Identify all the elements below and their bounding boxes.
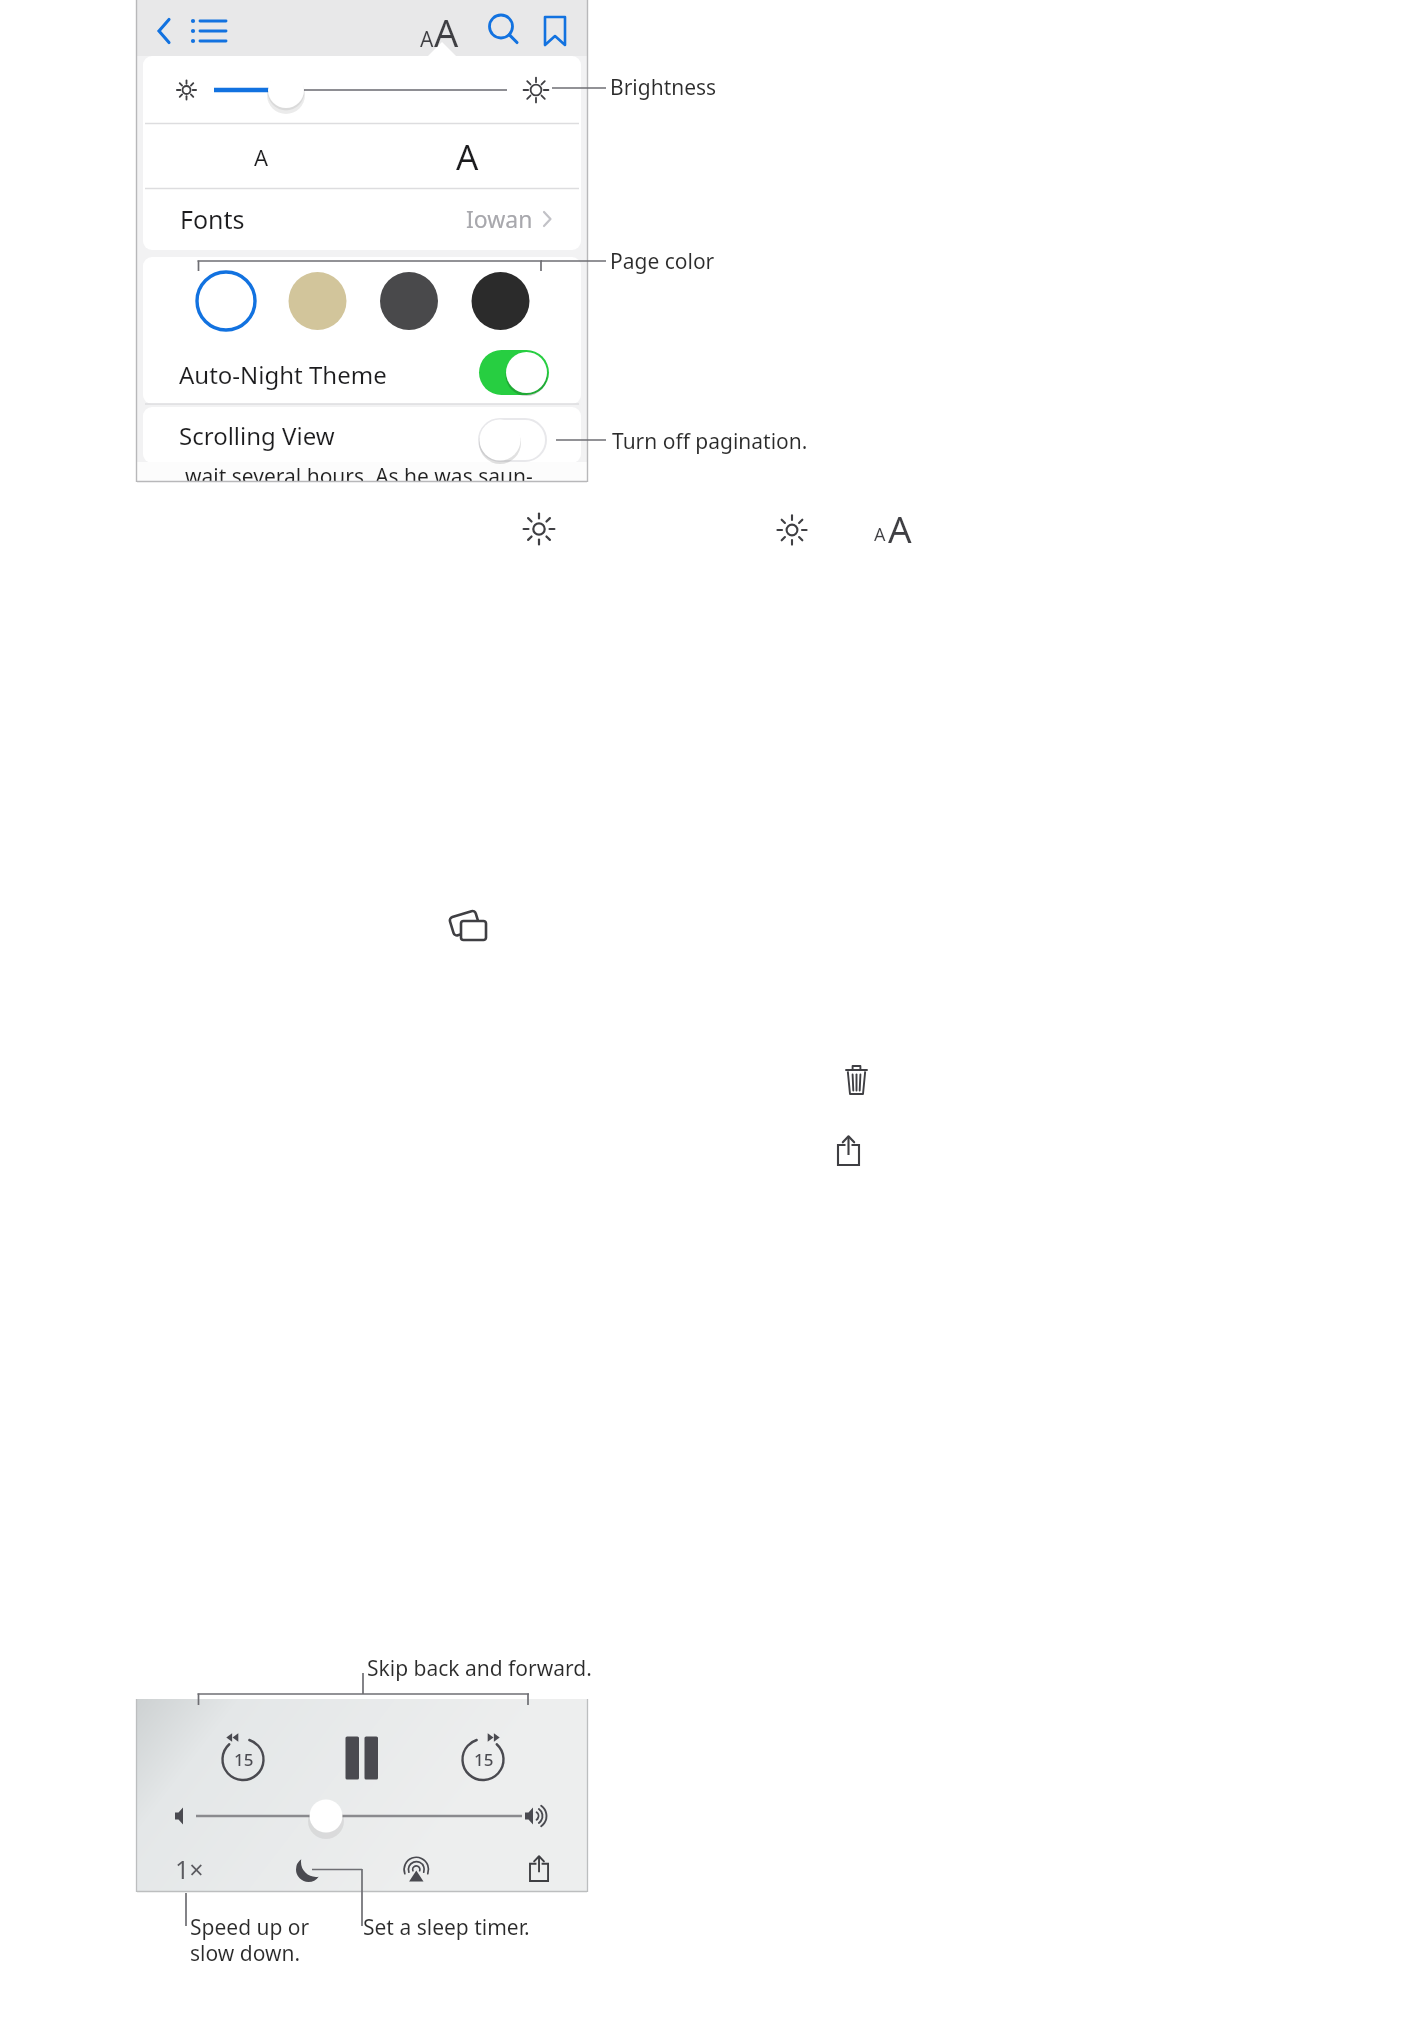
staticText: A [888, 503, 912, 553]
button[interactable]: Share [522, 1849, 562, 1889]
button[interactable]: Page color 0 [196, 271, 256, 331]
staticText: Scrolling View [179, 419, 335, 452]
staticText: Turn off pagination. [612, 427, 808, 456]
button[interactable]: Appearance [415, 6, 471, 52]
button[interactable]: Page color 3 [471, 271, 531, 331]
staticText: Page color [610, 247, 715, 276]
staticText: A [420, 25, 434, 54]
button[interactable]: Bookmark [533, 8, 579, 52]
button[interactable]: Page color 1 [288, 271, 348, 331]
button[interactable]: Search [479, 8, 527, 52]
staticText: A [434, 6, 459, 52]
button[interactable]: Skip back 15 seconds [221, 1737, 266, 1781]
button[interactable]: Scrolling View [143, 408, 581, 462]
staticText: 1× [175, 1852, 204, 1886]
button[interactable]: Sleep timer [287, 1849, 331, 1889]
button[interactable]: Auto-Night Theme [143, 345, 581, 403]
button[interactable]: Brightness [207, 70, 517, 110]
button[interactable]: Page color 2 [379, 271, 439, 331]
button[interactable]: Scrolling View, off [479, 419, 546, 461]
staticText: Iowan [466, 203, 533, 234]
staticText: wait several hours. As he was saun- [185, 462, 533, 482]
button[interactable]: Skip forward 15 seconds [461, 1737, 506, 1781]
button[interactable]: A [221, 126, 302, 188]
button[interactable]: Playback speed [169, 1848, 213, 1890]
staticText: Skip back and forward. [367, 1654, 592, 1683]
staticText: Set a sleep timer. [363, 1913, 530, 1942]
staticText: Auto-Night Theme [179, 358, 387, 391]
staticText: A [874, 522, 886, 547]
button[interactable]: Auto-Night Theme, on [479, 350, 549, 395]
staticText: 15 [234, 1748, 254, 1771]
button[interactable]: Pause [334, 1731, 390, 1789]
button[interactable]: Fonts [143, 190, 581, 247]
staticText: Speed up or slow down. [190, 1913, 310, 1968]
staticText: A [456, 133, 479, 181]
staticText: Fonts [180, 202, 245, 236]
button[interactable]: Back [151, 8, 191, 48]
button[interactable]: A [427, 126, 508, 188]
button[interactable]: Table of contents [185, 8, 237, 48]
button[interactable]: AirPlay [395, 1849, 439, 1889]
staticText: A [254, 142, 269, 172]
staticText: Brightness [610, 73, 717, 102]
staticText: 15 [474, 1748, 494, 1771]
